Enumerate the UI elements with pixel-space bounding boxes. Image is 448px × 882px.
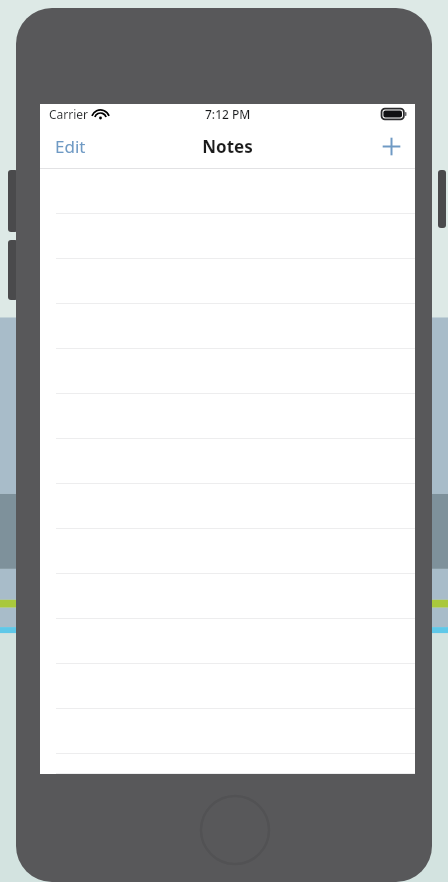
staticText: 7:12 PM [205, 106, 251, 122]
button[interactable]: Edit [40, 125, 101, 168]
button[interactable]: New note [368, 128, 415, 165]
staticText: Notes [202, 135, 253, 158]
button[interactable] [40, 754, 415, 774]
staticText: Edit [55, 135, 86, 158]
staticText: Carrier [49, 106, 89, 122]
